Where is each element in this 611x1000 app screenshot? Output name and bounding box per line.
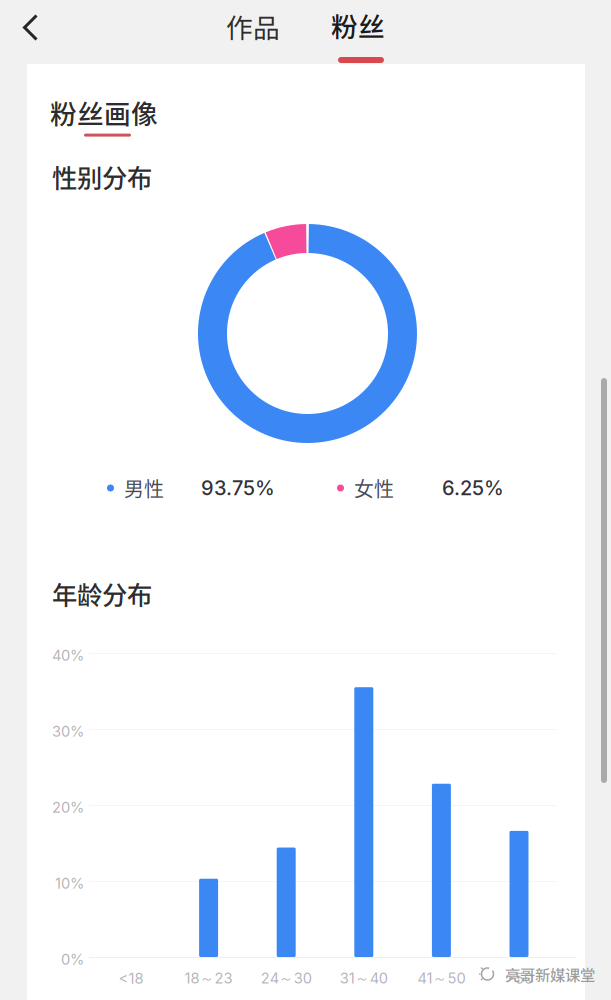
- button[interactable]: 作品: [225, 8, 281, 44]
- button[interactable]: 粉丝: [331, 7, 387, 63]
- staticText: 粉丝画像: [50, 93, 158, 132]
- staticText: >50: [505, 970, 533, 987]
- staticText: 粉丝: [331, 6, 385, 44]
- staticText: 亮哥新媒课堂: [505, 963, 595, 985]
- staticText: 18～23: [185, 969, 233, 988]
- staticText: <18: [118, 970, 143, 987]
- staticText: 93.75%: [201, 476, 275, 500]
- staticText: 作品: [226, 7, 280, 45]
- staticText: 性别分布: [52, 158, 152, 195]
- staticText: 女性: [354, 473, 394, 502]
- staticText: 6.25%: [442, 476, 504, 500]
- staticText: 24～30: [261, 969, 312, 988]
- staticText: 41～50: [417, 969, 465, 988]
- staticText: 年龄分布: [52, 575, 152, 612]
- staticText: 10%: [55, 875, 84, 892]
- staticText: 0%: [61, 951, 84, 968]
- button[interactable]: Back: [18, 12, 54, 50]
- staticText: 男性: [124, 473, 164, 502]
- staticText: 30%: [52, 723, 84, 740]
- staticText: 31～40: [340, 969, 388, 988]
- staticText: 40%: [52, 647, 84, 664]
- staticText: 20%: [52, 799, 84, 816]
